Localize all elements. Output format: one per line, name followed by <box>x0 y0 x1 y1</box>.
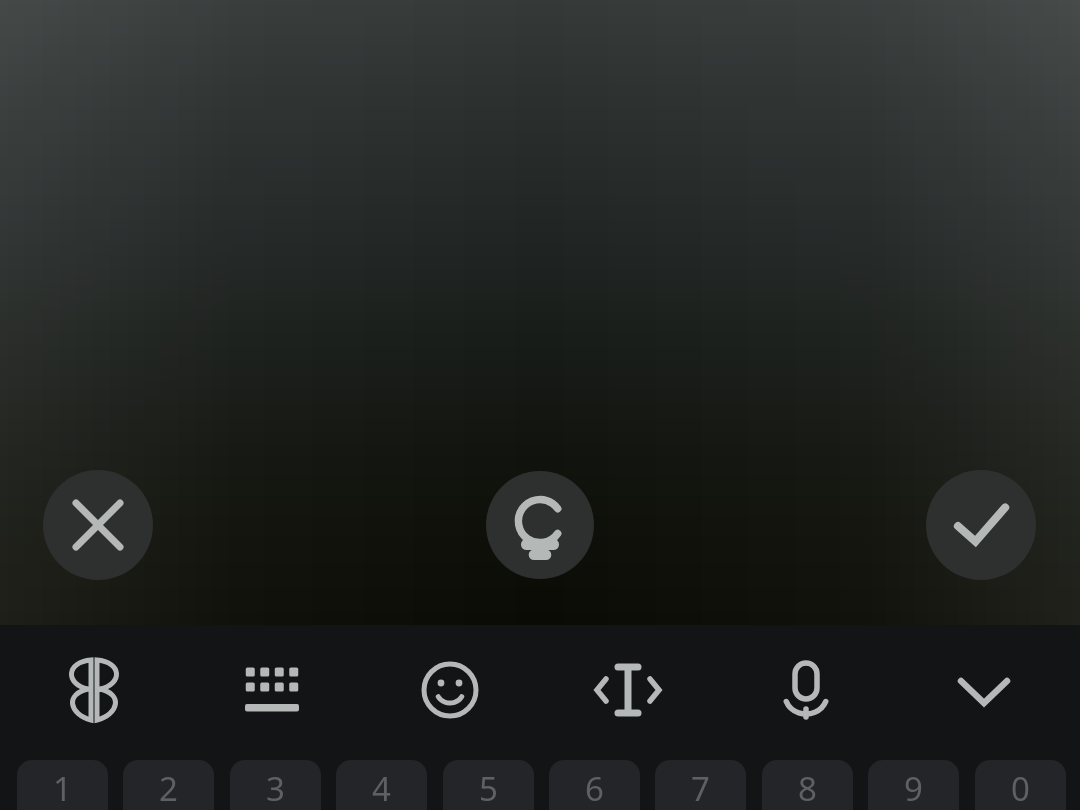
button[interactable]: 9 <box>868 760 959 810</box>
button[interactable]: Keyboard layout <box>236 654 308 726</box>
button[interactable]: 8 <box>762 760 853 810</box>
button[interactable]: Done <box>926 470 1036 580</box>
button[interactable]: 0 <box>975 760 1066 810</box>
button[interactable]: 6 <box>549 760 640 810</box>
staticText: 0 <box>1011 766 1030 810</box>
staticText: 1 <box>53 766 72 810</box>
staticText: 4 <box>372 766 391 810</box>
button[interactable]: Close <box>43 470 153 580</box>
staticText: 8 <box>798 766 817 810</box>
button[interactable]: 4 <box>336 760 427 810</box>
button[interactable]: Voice input <box>770 654 842 726</box>
button[interactable]: Collapse <box>948 654 1020 726</box>
button[interactable]: Text editing <box>592 654 664 726</box>
staticText: 7 <box>691 766 710 810</box>
button[interactable]: 7 <box>655 760 746 810</box>
button[interactable]: 5 <box>443 760 534 810</box>
staticText: 2 <box>159 766 178 810</box>
button[interactable]: 1 <box>17 760 108 810</box>
staticText: 5 <box>479 766 498 810</box>
staticText: 3 <box>266 766 285 810</box>
staticText: 9 <box>904 766 923 810</box>
button[interactable]: Emoji <box>414 654 486 726</box>
staticText: 6 <box>585 766 604 810</box>
button[interactable]: 2 <box>123 760 214 810</box>
button[interactable]: Gboard <box>58 654 130 726</box>
button[interactable]: 3 <box>230 760 321 810</box>
button[interactable]: Flash <box>486 471 594 579</box>
